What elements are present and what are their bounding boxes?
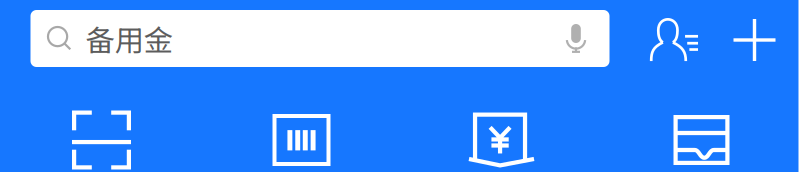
button[interactable]: Receive money — [401, 111, 601, 169]
button[interactable]: Contacts — [636, 10, 712, 67]
button[interactable]: Pay — [201, 111, 401, 169]
button[interactable]: Scan — [1, 111, 201, 169]
staticText: 备用金 — [85, 17, 172, 60]
button[interactable]: Bills — [601, 111, 800, 169]
button[interactable]: Add — [716, 10, 792, 67]
button[interactable]: 备用金 — [30, 10, 609, 67]
